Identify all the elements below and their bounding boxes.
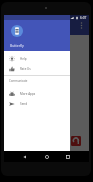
button[interactable]: Home [43,153,51,161]
button[interactable]: More options [77,21,86,30]
button[interactable]: App shortcut [71,136,81,146]
staticText: Communicate [9,79,28,83]
staticText: 6:07 [80,16,87,20]
button[interactable]: Recents [64,153,72,161]
button[interactable]: More Apps [4,89,70,99]
button[interactable]: Rate Us [4,64,70,74]
button[interactable]: Send [4,99,70,109]
button[interactable]: Back [21,153,29,161]
staticText: Rate Us [20,67,31,71]
staticText: Send [20,102,28,106]
staticText: Butterfly [10,43,24,48]
staticText: More Apps [20,92,36,96]
button[interactable]: Help [4,54,70,64]
staticText: Help [20,57,27,61]
